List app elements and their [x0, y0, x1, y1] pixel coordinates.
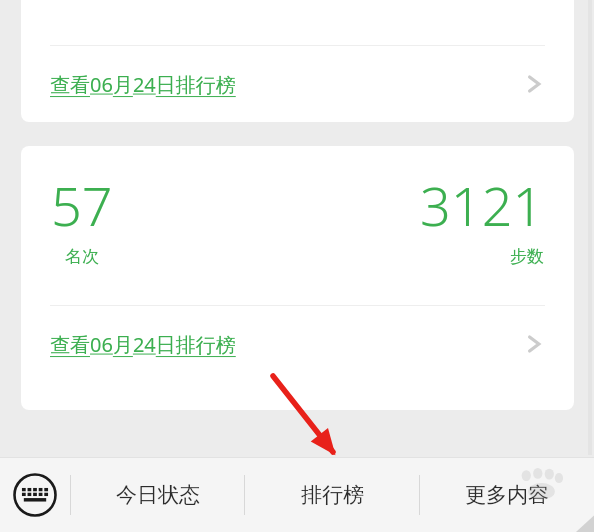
staticText: 排行榜: [301, 482, 364, 508]
staticText: 名次: [65, 246, 99, 267]
staticText: 今日状态: [116, 482, 200, 508]
button[interactable]: 查看06月24日排行榜: [21, 46, 574, 122]
button[interactable]: 今日状态: [71, 458, 244, 532]
staticText: 步数: [510, 246, 544, 267]
button[interactable]: 更多内容: [420, 458, 594, 532]
button[interactable]: 排行榜: [245, 458, 419, 532]
button[interactable]: Keyboard: [0, 458, 70, 532]
staticText: 3121: [420, 168, 544, 242]
staticText: 查看06月24日排行榜: [50, 331, 236, 358]
button[interactable]: 查看06月24日排行榜: [21, 306, 574, 382]
staticText: 更多内容: [465, 482, 549, 508]
staticText: 57: [51, 168, 113, 242]
staticText: 查看06月24日排行榜: [50, 71, 236, 98]
